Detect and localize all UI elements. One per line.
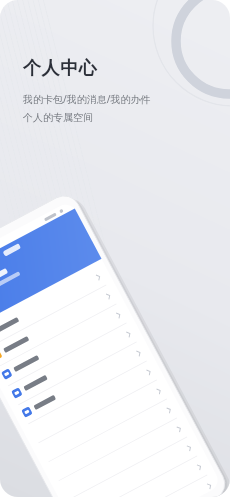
button[interactable]: 个人中心预览 bbox=[10, 178, 175, 368]
staticText: 个人的专属空间 bbox=[23, 111, 93, 124]
button[interactable]: 个人中心 bbox=[23, 57, 98, 80]
staticText: 我的卡包/我的消息/我的办件 bbox=[23, 92, 151, 106]
